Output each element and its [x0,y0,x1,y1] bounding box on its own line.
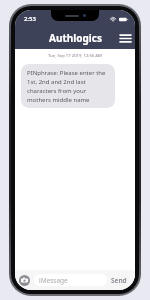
button[interactable]: Menu [115,27,135,49]
staticText: Send [111,276,127,285]
button[interactable]: iMessage [34,274,107,286]
staticText: PINphrase: Please enter the 1st, 2nd and… [27,69,109,103]
button[interactable]: Send [107,273,131,288]
staticText: Authlogics [49,31,102,45]
staticText: Tue, Sep 17 2019, 12:56 AM [15,53,135,59]
button[interactable]: PINphrase: Please enter the 1st, 2nd and… [21,64,115,108]
staticText: iMessage [39,276,68,285]
staticText: 2:53 [24,15,36,23]
button[interactable]: Camera [19,275,30,286]
